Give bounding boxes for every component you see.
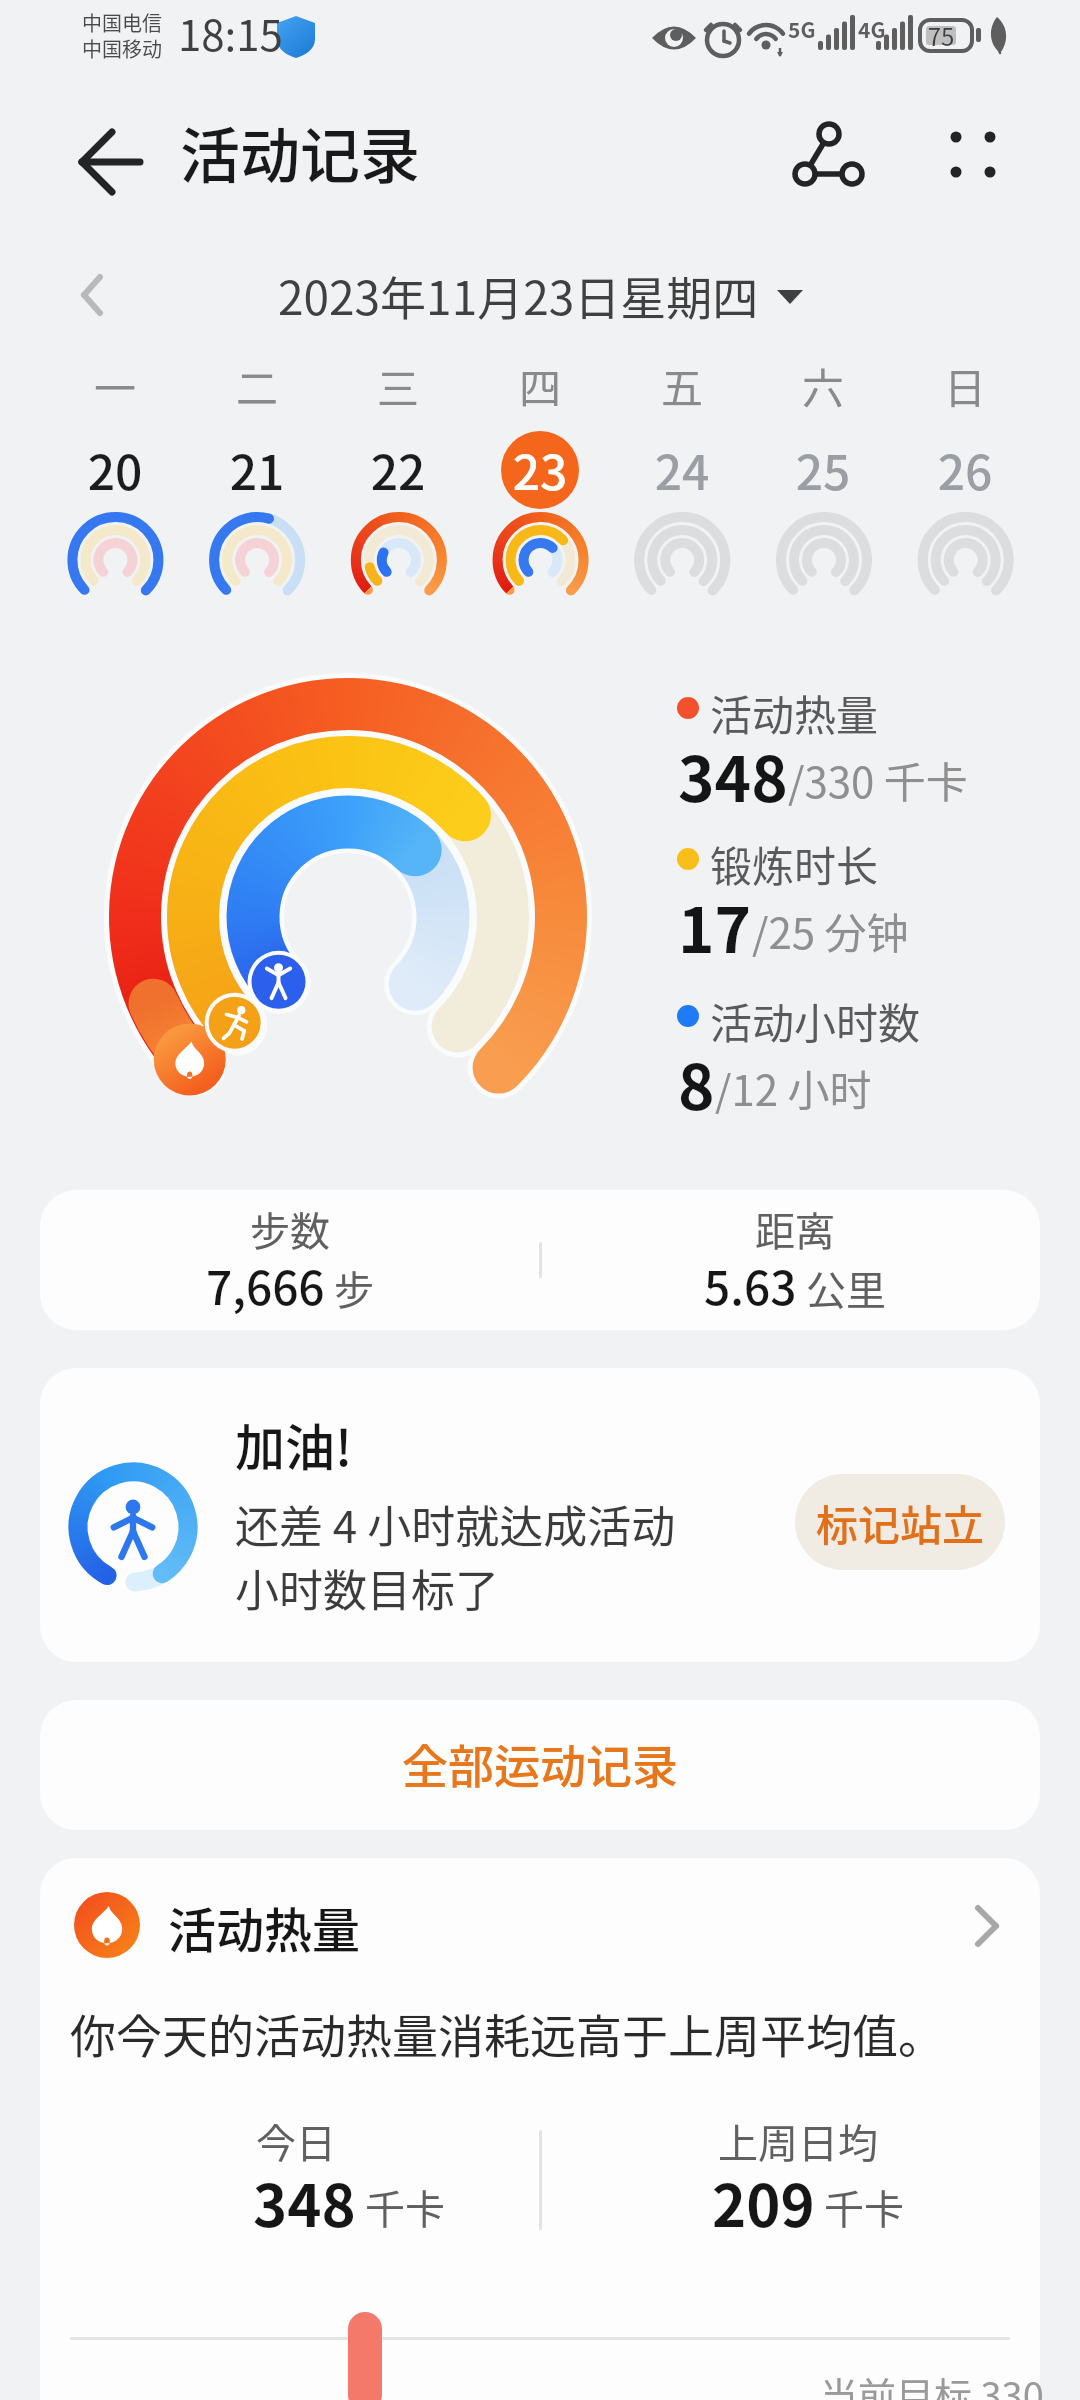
staticText: 21: [207, 434, 307, 504]
staticText: 4G: [858, 14, 886, 44]
staticText: 锻炼时长: [710, 833, 879, 894]
staticText: 8: [678, 1038, 715, 1128]
staticText: 活动热量: [168, 1892, 361, 1962]
button[interactable]: [60, 255, 1020, 335]
staticText: 标记站立: [795, 1492, 1005, 1553]
button[interactable]: [40, 1700, 1040, 1830]
staticText: 209: [712, 2160, 815, 2244]
staticText: 2023年11月23日星期四: [278, 262, 759, 329]
staticText: 小时数目标了: [235, 1556, 499, 1620]
staticText: 加油!: [235, 1408, 353, 1480]
staticText: 活动热量: [710, 682, 879, 743]
staticText: 活动小时数: [710, 990, 921, 1051]
button[interactable]: [754, 420, 896, 620]
staticText: 公里: [797, 1259, 886, 1317]
button[interactable]: [780, 110, 880, 210]
staticText: /25 分钟: [752, 900, 909, 961]
staticText: 上周日均: [718, 2112, 878, 2170]
staticText: 四: [505, 355, 575, 416]
staticText: 中国移动: [82, 34, 162, 63]
staticText: 23: [490, 434, 590, 504]
button[interactable]: [40, 1858, 1040, 1998]
staticText: 步数: [190, 1200, 390, 1258]
button[interactable]: [60, 120, 150, 210]
staticText: 日: [930, 355, 1000, 416]
button[interactable]: [44, 420, 186, 620]
staticText: 7,666: [206, 1252, 325, 1319]
button[interactable]: [612, 420, 754, 620]
staticText: /12 小时: [715, 1057, 872, 1118]
staticText: 5.63: [704, 1252, 797, 1319]
staticText: 活动记录: [180, 108, 420, 195]
staticText: 348: [678, 730, 788, 820]
staticText: 75: [927, 18, 955, 53]
staticText: 17: [678, 881, 752, 971]
staticText: 中国电信: [82, 8, 162, 37]
staticText: 25: [773, 434, 873, 504]
button[interactable]: [470, 420, 612, 620]
staticText: 一: [80, 355, 150, 416]
staticText: 今日: [256, 2112, 336, 2170]
staticText: 二: [222, 355, 292, 416]
staticText: 千卡: [815, 2178, 904, 2236]
button[interactable]: [930, 110, 1020, 200]
staticText: 20: [65, 434, 165, 504]
staticText: 你今天的活动热量消耗远高于上周平均值。: [70, 2000, 944, 2067]
button[interactable]: 标记站立: [795, 1474, 1005, 1570]
staticText: 26: [915, 434, 1015, 504]
staticText: 18:15: [178, 2, 283, 63]
button[interactable]: [186, 420, 328, 620]
staticText: 348: [253, 2160, 356, 2244]
staticText: 24: [632, 434, 732, 504]
staticText: 当前目标 330: [820, 2366, 1044, 2400]
staticText: 三: [363, 355, 433, 416]
staticText: 还差 4 小时就达成活动: [235, 1492, 676, 1556]
staticText: 22: [348, 434, 448, 504]
staticText: /330 千卡: [788, 749, 968, 810]
staticText: 距离: [695, 1200, 895, 1258]
button[interactable]: [328, 420, 470, 620]
staticText: 步: [325, 1259, 374, 1317]
staticText: 5G: [788, 14, 816, 44]
staticText: 五: [647, 355, 717, 416]
staticText: 六: [788, 355, 858, 416]
staticText: 千卡: [356, 2178, 445, 2236]
button[interactable]: [896, 420, 1038, 620]
staticText: 全部运动记录: [0, 1730, 1080, 1797]
